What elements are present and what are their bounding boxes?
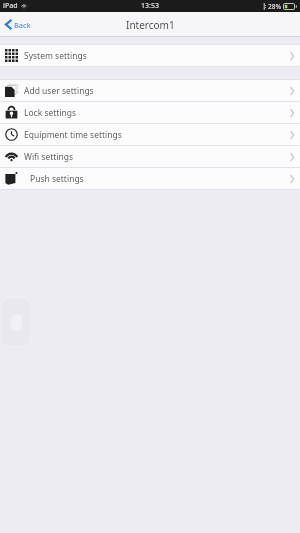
button[interactable]: Back [0, 14, 41, 35]
staticText: 13:53 [141, 1, 159, 11]
staticText: Wifi settings [24, 151, 74, 163]
button[interactable]: Add user settings [0, 80, 300, 101]
staticText: Lock settings [24, 107, 77, 119]
other: Lock settings [5, 106, 18, 119]
staticText: Back [14, 20, 31, 30]
other: Equipment time settings [5, 128, 18, 141]
other: Wifi settings [5, 150, 18, 163]
other: Push settings [5, 172, 18, 185]
staticText: Intercom1 [126, 18, 175, 32]
button[interactable]: Lock settings [0, 102, 300, 123]
button[interactable]: System settings [0, 45, 300, 66]
staticText: Equipment time settings [24, 129, 122, 141]
button[interactable]: Equipment time settings [0, 124, 300, 145]
button[interactable]: Push settings [0, 168, 300, 189]
other: System settings [5, 49, 18, 62]
staticText: 28% [268, 2, 281, 11]
staticText: Add user settings [24, 85, 94, 97]
staticText: System settings [24, 50, 87, 62]
staticText: iPad [3, 1, 18, 11]
staticText: Push settings [30, 173, 84, 185]
button[interactable]: Wifi settings [0, 146, 300, 167]
other: Add user settings [5, 84, 18, 97]
